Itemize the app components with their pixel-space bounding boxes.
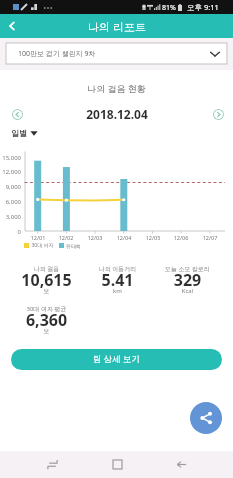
button[interactable]: Home [107,451,128,478]
staticText: 오후 9:11 [187,2,219,12]
staticText: 12/03 [81,234,109,241]
staticText: 나의 걸음 현황 [0,82,233,94]
staticText: 오늘 소모 칼로리 [152,265,223,273]
staticText: 12/05 [139,234,167,241]
button[interactable]: 100만보 걷기 챌린지 9차 [6,43,227,64]
staticText: 일별 [11,128,27,138]
staticText: 보 [11,287,82,295]
staticText: 329 [152,269,223,291]
staticText: 나의 이동거리 [82,265,153,273]
staticText: 12,000 [0,168,21,176]
button[interactable]: Back [0,14,24,38]
staticText: 보 [11,327,82,335]
button[interactable]: Back [171,451,192,478]
staticText: 12/01 [24,234,52,241]
button[interactable]: Previous [12,109,23,120]
button[interactable]: Next [213,109,224,120]
staticText: 나의 걸음 [11,265,82,273]
staticText: 81% [162,3,176,13]
staticText: 0 [0,228,21,236]
button[interactable]: Recents [42,451,63,478]
staticText: 12/07 [196,234,224,241]
staticText: 30대 여자 평균 [11,305,82,313]
staticText: 15,000 [0,154,21,162]
staticText: 2018.12.04 [86,106,148,122]
staticText: 팀 상세 보기 [93,353,140,365]
button[interactable]: Share [190,402,222,434]
button[interactable]: 일별 [11,127,38,139]
staticText: 10,615 [11,269,82,291]
staticText: 12/04 [110,234,138,241]
staticText: 6,000 [0,198,21,206]
staticText: 100만보 걷기 챌린지 9차 [18,49,96,59]
staticText: 12/06 [167,234,195,241]
button[interactable]: 팀 상세 보기 [11,349,222,370]
staticText: 3,000 [0,213,21,221]
staticText: Kcal [152,287,223,295]
staticText: 6,360 [11,309,82,331]
staticText: 5.41 [82,269,153,291]
staticText: 9,000 [0,183,21,191]
staticText: 12/02 [52,234,80,241]
staticText: 유태희 [66,243,81,249]
staticText: 나의 리포트 [88,19,146,34]
staticText: km [82,287,153,295]
staticText: 30대 여자 [31,242,54,249]
